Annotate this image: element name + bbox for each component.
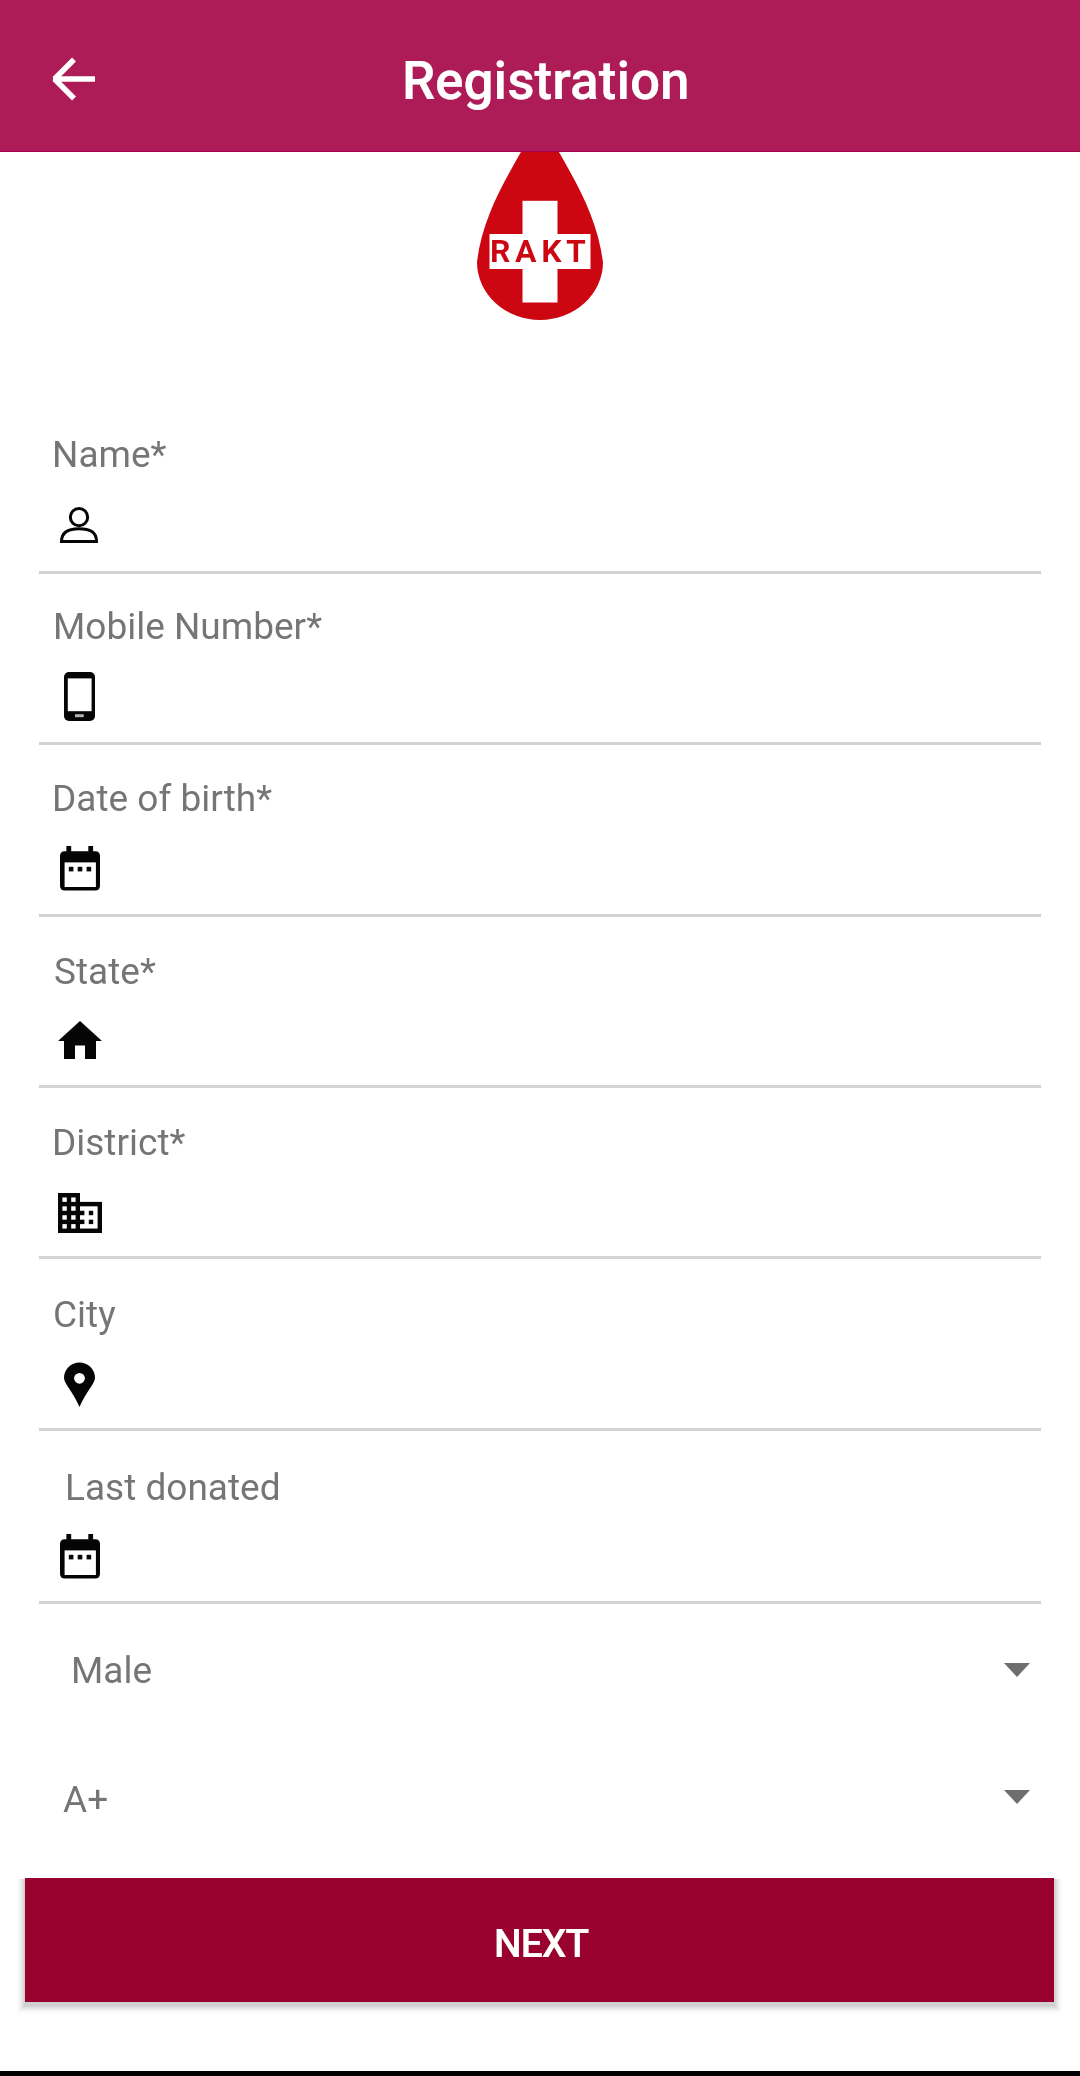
staticText: RAKT (490, 232, 591, 270)
staticText: Male (71, 1649, 153, 1692)
staticText: Date of birth* (52, 777, 273, 820)
staticText: Name* (52, 433, 167, 476)
button[interactable] (0, 1257, 1080, 1428)
staticText: District* (52, 1121, 186, 1164)
staticText: Mobile Number* (53, 605, 323, 648)
button[interactable]: Back (34, 39, 114, 119)
button[interactable] (0, 1728, 1080, 1855)
staticText: A+ (63, 1778, 109, 1821)
button[interactable] (0, 400, 1080, 571)
staticText: NEXT (494, 1921, 589, 1967)
button[interactable] (0, 571, 1080, 742)
button[interactable] (0, 914, 1080, 1085)
staticText: City (53, 1293, 116, 1336)
button[interactable] (0, 1601, 1080, 1728)
staticText: State* (54, 950, 156, 993)
staticText: Last donated (65, 1466, 281, 1509)
staticText: Registration (402, 50, 690, 112)
button[interactable] (0, 1085, 1080, 1256)
button[interactable] (0, 1430, 1080, 1601)
button[interactable] (0, 743, 1080, 914)
button[interactable] (25, 1878, 1054, 2002)
